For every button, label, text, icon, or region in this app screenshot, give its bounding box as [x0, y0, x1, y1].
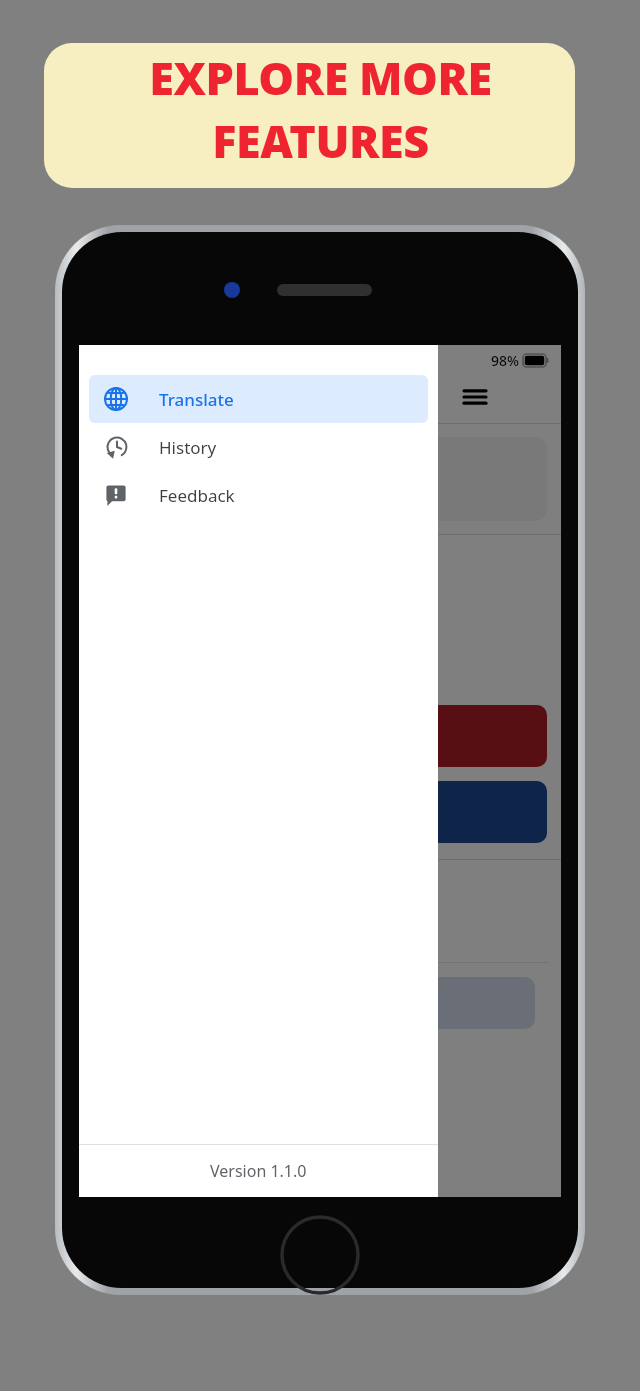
staticText: EXPLORE MORE	[149, 47, 492, 108]
staticText: 98%	[491, 351, 519, 370]
button[interactable]: Translate	[93, 781, 547, 843]
button[interactable]: English	[93, 437, 547, 521]
staticText: History	[159, 436, 217, 459]
button[interactable]: History	[89, 423, 428, 471]
button[interactable]: Open navigation menu	[453, 375, 497, 419]
button[interactable]: Feedback	[89, 471, 428, 519]
staticText: FEATURES	[212, 110, 429, 171]
button[interactable]: Clear	[93, 705, 547, 767]
button[interactable]: Speak	[105, 977, 535, 1029]
staticText: Translate	[159, 388, 234, 411]
staticText: English	[222, 464, 302, 495]
staticText: Feedback	[159, 484, 235, 507]
staticText: Version 1.1.0	[210, 1160, 307, 1182]
button[interactable]: Translate	[89, 375, 428, 423]
